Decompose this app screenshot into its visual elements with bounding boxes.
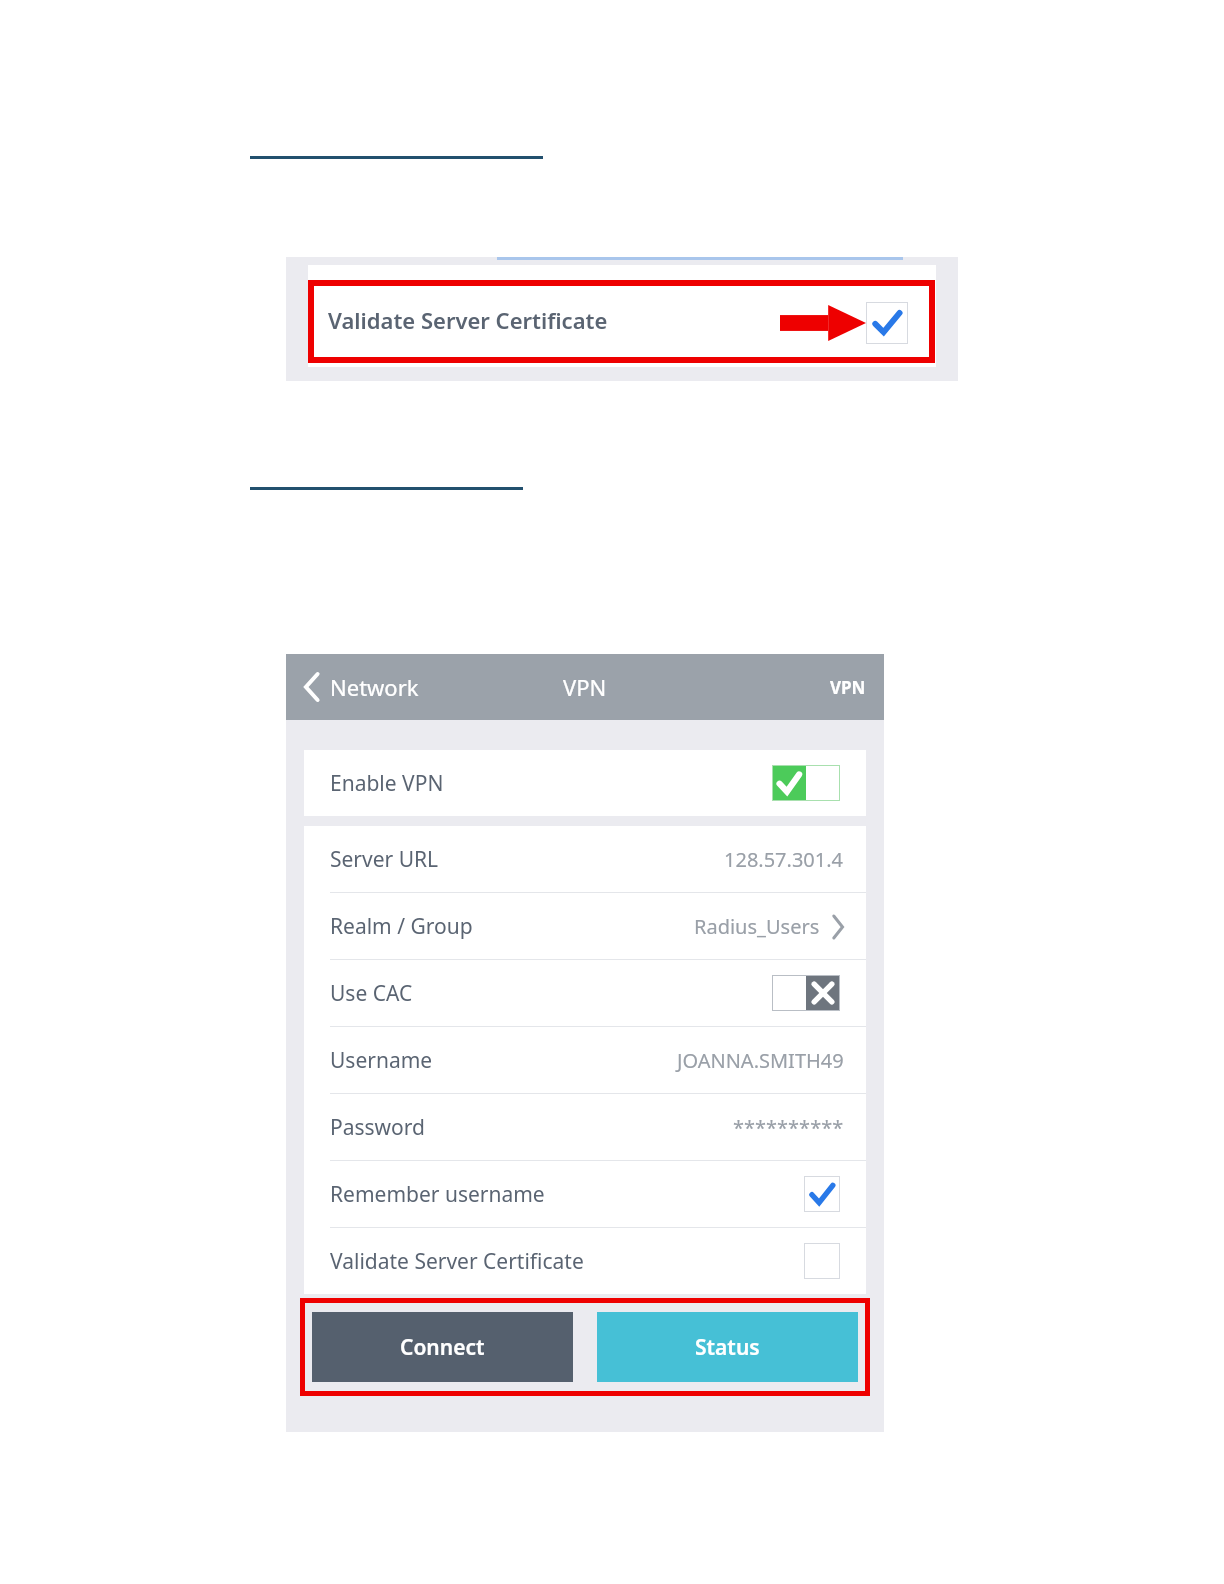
button[interactable]: Password [304,1094,866,1160]
button[interactable]: Enable VPN [304,750,866,816]
button[interactable]: Connect [312,1312,573,1382]
staticText: Connect [400,1333,485,1362]
staticText: JOANNA.SMITH49 [677,1047,844,1074]
button[interactable]: Use CAC [304,960,866,1026]
button[interactable]: Remember username [304,1161,866,1227]
button[interactable]: Server URL [304,826,866,892]
staticText: Username [330,1046,433,1075]
staticText: Status [695,1333,760,1362]
button[interactable]: Network [304,672,419,702]
staticText: Remember username [330,1180,545,1209]
staticText: Validate Server Certificate [330,1247,584,1276]
staticText: VPN [563,672,607,702]
button[interactable]: Validate Server Certificate [304,1228,866,1294]
staticText: VPN [830,676,866,699]
staticText: Password [330,1113,425,1142]
button[interactable]: Realm / Group [304,893,866,959]
button[interactable]: Status [597,1312,858,1382]
staticText: Enable VPN [330,769,444,798]
button[interactable]: Validate Server Certificate checkbox [866,302,908,344]
button[interactable]: Toggle on [772,765,840,801]
button[interactable]: Username [304,1027,866,1093]
staticText: Server URL [330,845,439,874]
staticText: ********** [733,1114,844,1141]
button[interactable]: Toggle off [772,975,840,1011]
staticText: Realm / Group [330,912,473,941]
staticText: Use CAC [330,979,413,1008]
staticText: 128.57.301.4 [724,846,844,873]
staticText: Validate Server Certificate [328,305,608,335]
staticText: Radius_Users [694,913,820,940]
staticText: Network [330,672,419,702]
